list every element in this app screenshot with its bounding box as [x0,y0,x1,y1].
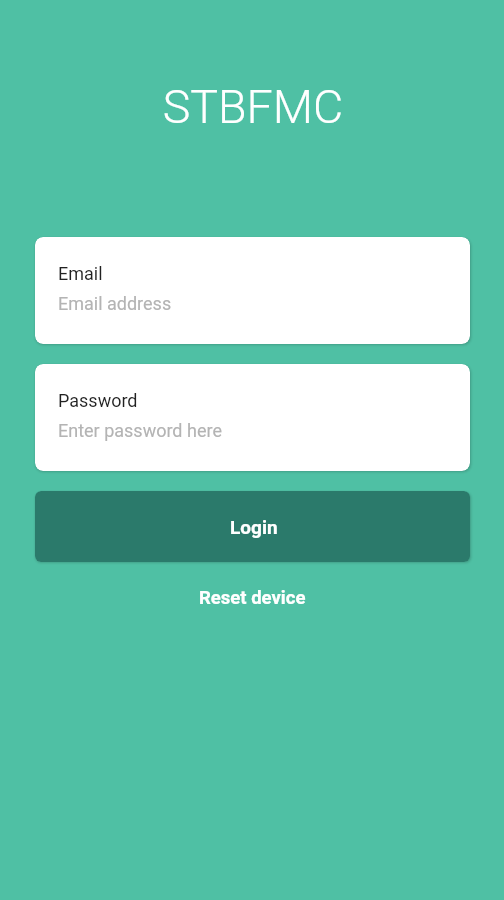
staticText: Email [58,263,103,284]
button[interactable]: Email [35,237,470,344]
button[interactable]: Reset device [181,575,324,621]
staticText: Enter password here [58,420,222,441]
staticText: Reset device [199,587,306,609]
staticText: Email address [58,293,172,314]
staticText: STBFMC [1,80,504,134]
button[interactable]: Password [35,364,470,471]
staticText: Password [58,390,138,411]
button[interactable]: Login [35,491,470,562]
staticText: Login [230,516,278,538]
